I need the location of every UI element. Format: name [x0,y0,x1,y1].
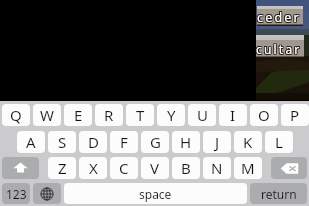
button[interactable]: C [110,157,138,179]
staticText: ceder [257,8,301,25]
button[interactable]: Y [157,104,185,126]
button[interactable]: J [203,131,231,153]
button[interactable]: O [250,104,278,126]
button[interactable]: ceder [257,6,303,26]
button[interactable]: W [33,104,61,126]
button[interactable]: U [188,104,216,126]
staticText: ceder [256,8,300,25]
button[interactable]: Shift [2,157,39,179]
staticText: T [136,105,145,125]
staticText: ceder [256,9,300,26]
staticText: cultar [257,42,303,58]
button[interactable]: N [203,157,231,179]
button[interactable]: P [281,104,309,126]
button[interactable]: G [141,131,169,153]
staticText: cultar [255,42,301,58]
staticText: Z [58,158,67,178]
button[interactable]: T [126,104,154,126]
staticText: cultar [256,41,302,57]
button[interactable]: E [64,104,92,126]
staticText: S [58,132,67,152]
staticText: cultar [256,40,302,56]
staticText: Y [167,105,176,125]
staticText: 123 [6,186,27,202]
staticText: X [89,158,98,178]
button[interactable]: K [234,131,262,153]
staticText: F [120,132,128,152]
button[interactable]: V [141,157,169,179]
staticText: ceder [257,10,301,27]
staticText: cultar [255,40,301,56]
staticText: C [119,158,129,178]
staticText: K [243,132,253,152]
button[interactable]: A [17,131,45,153]
staticText: D [88,132,99,152]
button[interactable]: X [79,157,107,179]
staticText: L [275,132,283,152]
button[interactable]: D [79,131,107,153]
staticText: cultar [257,40,303,56]
button[interactable]: R [95,104,123,126]
button[interactable]: return [250,183,307,204]
staticText: N [211,158,223,178]
staticText: R [104,105,114,125]
button[interactable]: S [48,131,76,153]
staticText: cultar [257,41,303,57]
staticText: A [26,132,36,152]
button[interactable]: I [219,104,247,126]
button[interactable]: Q [2,104,30,126]
button[interactable]: H [172,131,200,153]
staticText: W [40,105,54,125]
button[interactable]: cultar [256,35,304,58]
button[interactable]: F [110,131,138,153]
staticText: G [150,132,161,152]
staticText: B [181,158,191,178]
staticText: P [290,105,300,125]
staticText: ceder [258,8,302,25]
button[interactable]: B [172,157,200,179]
staticText: U [197,105,208,125]
staticText: H [180,132,192,152]
staticText: ceder [256,10,300,27]
staticText: cultar [256,42,302,58]
button[interactable]: L [265,131,293,153]
button[interactable]: Backspace [271,157,307,179]
staticText: Q [10,105,22,125]
staticText: ceder [258,9,302,26]
staticText: cultar [255,41,301,57]
staticText: M [241,158,255,178]
button[interactable]: Z [48,157,76,179]
button[interactable]: M [234,157,262,179]
staticText: I [230,105,236,125]
staticText: space [139,186,172,202]
staticText: return [261,186,297,202]
staticText: E [74,105,83,125]
button[interactable]: 123 [2,183,30,204]
button[interactable]: Change keyboard [33,183,61,204]
staticText: O [258,105,270,125]
button[interactable]: space [64,183,247,204]
staticText: J [215,132,220,152]
staticText: V [150,158,160,178]
staticText: ceder [258,10,302,27]
staticText: ceder [257,9,301,26]
